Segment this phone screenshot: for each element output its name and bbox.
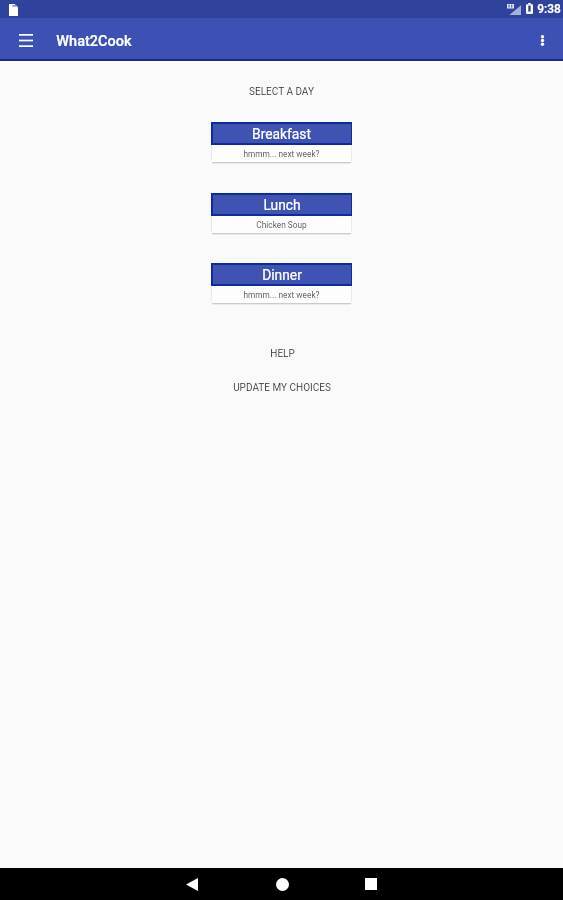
button[interactable]: Recent apps bbox=[348, 868, 394, 900]
staticText: HELP bbox=[270, 348, 295, 360]
button[interactable]: More options bbox=[525, 23, 559, 57]
button[interactable]: Back bbox=[169, 868, 215, 900]
staticText: Chicken Soup bbox=[256, 220, 307, 230]
button[interactable]: HELP bbox=[254, 342, 310, 366]
button[interactable]: UPDATE MY CHOICES bbox=[217, 376, 347, 400]
staticText: Breakfast bbox=[252, 126, 311, 142]
button[interactable]: Dinner bbox=[211, 263, 352, 306]
staticText: SELECT A DAY bbox=[249, 86, 314, 98]
staticText: UPDATE MY CHOICES bbox=[233, 382, 331, 394]
staticText: Dinner bbox=[262, 267, 302, 283]
button[interactable]: Open navigation menu bbox=[9, 23, 43, 57]
button[interactable]: Breakfast bbox=[211, 122, 352, 165]
staticText: 9:38 bbox=[537, 2, 561, 16]
staticText: hmmm... next week? bbox=[243, 149, 320, 159]
staticText: hmmm... next week? bbox=[243, 290, 320, 300]
staticText: Lunch bbox=[263, 197, 301, 213]
button[interactable]: Home bbox=[259, 868, 305, 900]
staticText: What2Cook bbox=[56, 33, 132, 50]
button[interactable]: Lunch bbox=[211, 193, 352, 236]
